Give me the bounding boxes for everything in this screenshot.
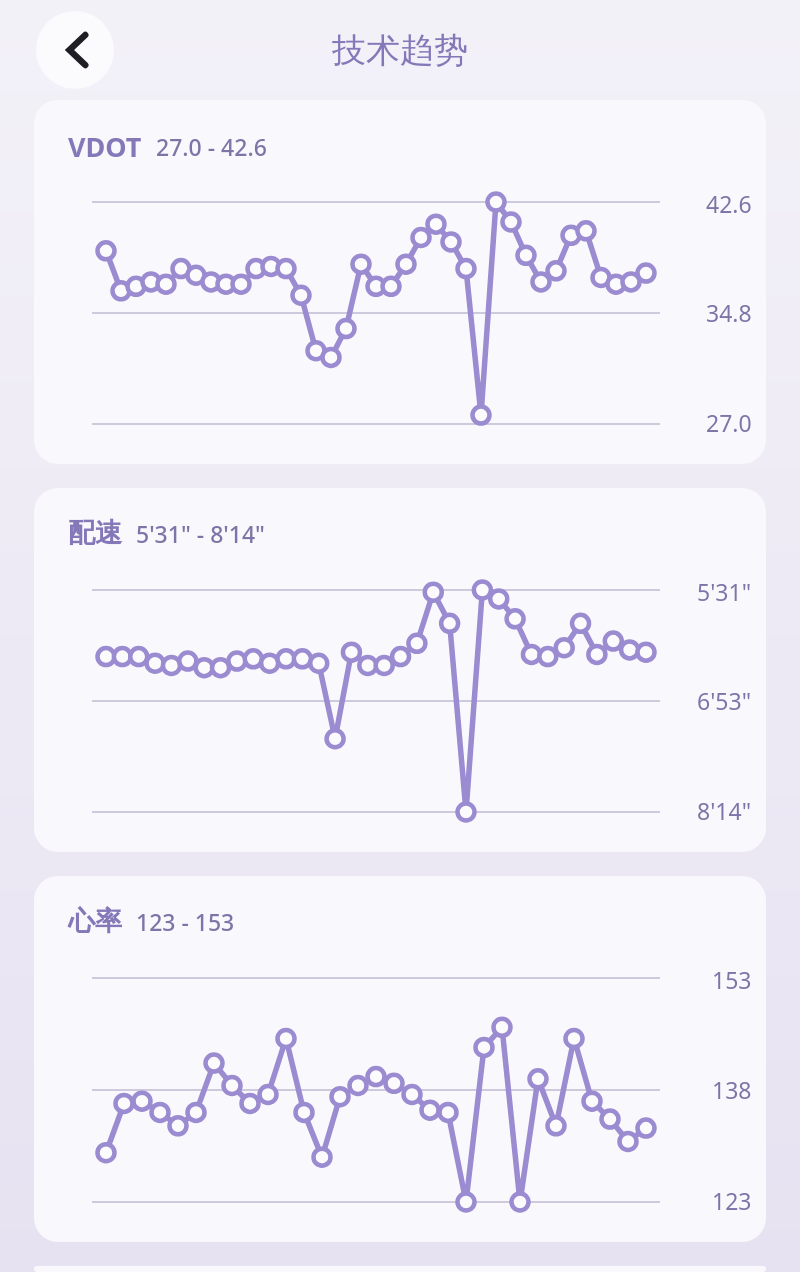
button[interactable]: 心率 (34, 876, 766, 1242)
staticText: 配速 (68, 516, 122, 550)
staticText: 6'53" (697, 685, 752, 716)
staticText: 123 - 153 (136, 906, 235, 937)
staticText: 138 (712, 1074, 752, 1105)
button[interactable]: VDOT (34, 100, 766, 464)
staticText: 8'14" (697, 795, 752, 826)
staticText: 技术趋势 (332, 29, 468, 72)
staticText: 5'31" - 8'14" (136, 518, 265, 549)
staticText: VDOT (68, 128, 142, 165)
button[interactable]: 配速 (34, 488, 766, 852)
staticText: 153 (712, 964, 752, 995)
staticText: 5'31" (697, 576, 752, 607)
staticText: 123 (712, 1185, 752, 1216)
button[interactable]: Back (36, 11, 114, 89)
staticText: 34.8 (706, 297, 752, 328)
staticText: 27.0 (706, 407, 752, 438)
staticText: 42.6 (706, 188, 752, 219)
staticText: 27.0 - 42.6 (156, 131, 267, 162)
staticText: 心率 (68, 904, 122, 938)
